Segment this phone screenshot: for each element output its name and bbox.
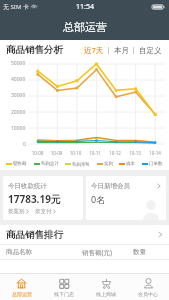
- button[interactable]: 今日新增会员: [86, 176, 166, 220]
- button[interactable]: 按案别: [8, 208, 29, 215]
- staticText: 10-14: [145, 150, 165, 156]
- staticText: 订单数: [149, 161, 163, 167]
- staticText: 10000: [11, 125, 26, 132]
- staticText: 线上商城: [96, 291, 116, 297]
- staticText: 销售额(元): [82, 248, 133, 257]
- staticText: 10-08: [28, 150, 47, 156]
- button[interactable]: 按支付: [35, 208, 56, 215]
- staticText: 实利: [104, 161, 113, 167]
- staticText: 总部运营: [12, 291, 32, 297]
- staticText: 毛利总计: [41, 161, 59, 167]
- staticText: 商品销售排行: [6, 229, 63, 241]
- staticText: 成本: [126, 161, 135, 167]
- staticText: 50000: [11, 60, 26, 67]
- staticText: 毛利率%: [72, 161, 90, 167]
- staticText: 10-10: [66, 150, 85, 156]
- staticText: 20000: [11, 109, 26, 116]
- button[interactable]: 会员中心: [127, 274, 169, 300]
- button[interactable]: 今日收款统计: [3, 176, 83, 220]
- button[interactable]: 本月: [113, 46, 130, 55]
- button[interactable]: 总部运营: [0, 274, 43, 300]
- staticText: 10-11: [85, 150, 105, 156]
- staticText: 0名: [91, 193, 106, 205]
- staticText: 今日收款统计: [8, 182, 47, 190]
- staticText: 40000: [11, 76, 26, 83]
- staticText: |: [105, 45, 113, 55]
- staticText: 按支付: [35, 208, 52, 215]
- staticText: 商品名称: [6, 248, 82, 256]
- staticText: 10-12: [105, 150, 125, 156]
- staticText: 0: [23, 141, 26, 148]
- staticText: 10-13: [125, 150, 145, 156]
- button[interactable]: 线上商城: [85, 274, 127, 300]
- staticText: 10-09: [47, 150, 66, 156]
- staticText: |: [130, 45, 138, 55]
- button[interactable]: 线下门店: [43, 274, 85, 300]
- staticText: 17783.19元: [8, 192, 61, 206]
- staticText: 今日新增会员: [91, 182, 130, 190]
- staticText: 销售额: [13, 161, 27, 167]
- staticText: 30000: [11, 92, 26, 99]
- button[interactable]: 近7天: [83, 45, 105, 55]
- staticText: 数量: [133, 248, 163, 256]
- staticText: 按案别: [8, 208, 25, 215]
- staticText: 本月: [114, 46, 129, 55]
- staticText: 总部运营: [63, 20, 107, 34]
- staticText: 11:54: [76, 2, 94, 12]
- button[interactable]: 商品销售排行: [0, 225, 169, 244]
- staticText: 无 SIM 卡: [3, 3, 29, 11]
- staticText: 近7天: [84, 45, 104, 55]
- staticText: 商品销售分析: [6, 44, 63, 56]
- button[interactable]: 自定义: [138, 46, 163, 55]
- staticText: 线下门店: [54, 291, 74, 297]
- staticText: 会员中心: [138, 291, 158, 297]
- staticText: 自定义: [139, 46, 162, 55]
